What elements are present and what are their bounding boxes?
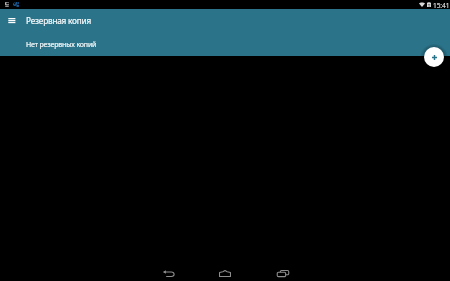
- button[interactable]: Нет резервных копий: [0, 36, 450, 56]
- button[interactable]: Home: [207, 262, 242, 281]
- staticText: Нет резервных копий: [26, 40, 97, 50]
- button[interactable]: Back: [151, 262, 186, 281]
- staticText: Резервная копия: [26, 15, 92, 26]
- button[interactable]: Add backup: [420, 43, 448, 71]
- staticText: 15:41: [433, 1, 450, 10]
- button[interactable]: Recent apps: [265, 262, 300, 281]
- button[interactable]: Open navigation menu: [1, 9, 22, 29]
